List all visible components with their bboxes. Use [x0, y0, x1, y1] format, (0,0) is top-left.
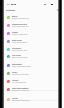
staticText: Emergency SOS, medical info — [12, 90, 30, 92]
staticText: Always show time and info — [12, 57, 28, 59]
staticText: Notifications — [12, 63, 22, 65]
staticText: 9:41 — [7, 3, 10, 5]
staticText: Privacy — [12, 71, 18, 73]
button[interactable]: Search settings — [56, 8, 60, 12]
button[interactable]: Privacy — [0, 69, 64, 77]
staticText: Phone unlock, find my device — [12, 100, 30, 102]
staticText: Themes — [12, 31, 18, 33]
staticText: Wallpaper and style — [12, 23, 27, 25]
button[interactable]: Notifications — [0, 61, 64, 69]
staticText: History, conversations, bubbles — [12, 66, 31, 68]
button[interactable]: Location — [0, 77, 64, 85]
staticText: Lock screen — [12, 54, 21, 56]
button[interactable]: Wallpaper and style — [0, 21, 64, 29]
staticText: Layout, app grid, gestures — [12, 42, 28, 44]
staticText: Permissions, account activity — [12, 74, 29, 76]
staticText: Change the system theme — [12, 34, 28, 36]
staticText: Display — [12, 15, 18, 17]
button[interactable]: Display — [0, 13, 64, 21]
staticText: Display, interaction, audio — [12, 50, 28, 52]
staticText: On - 3 apps have access — [12, 82, 26, 84]
button[interactable]: Home screen — [0, 37, 64, 45]
staticText: Brightness, Dark theme, font — [12, 18, 29, 20]
staticText: Colours, themed icons, grid — [12, 26, 29, 28]
staticText: Security — [12, 97, 19, 99]
staticText: Settings — [6, 9, 15, 12]
button[interactable]: Security — [0, 95, 64, 103]
button[interactable]: Accessibility — [0, 45, 64, 53]
button[interactable]: Themes — [0, 29, 64, 37]
staticText: Accessibility — [12, 47, 22, 49]
button[interactable]: Safety and emergency — [0, 85, 64, 93]
staticText: Home screen — [12, 39, 22, 41]
staticText: Safety and emergency — [12, 87, 29, 89]
staticText: Location — [12, 79, 19, 81]
button[interactable]: Lock screen — [0, 52, 64, 60]
